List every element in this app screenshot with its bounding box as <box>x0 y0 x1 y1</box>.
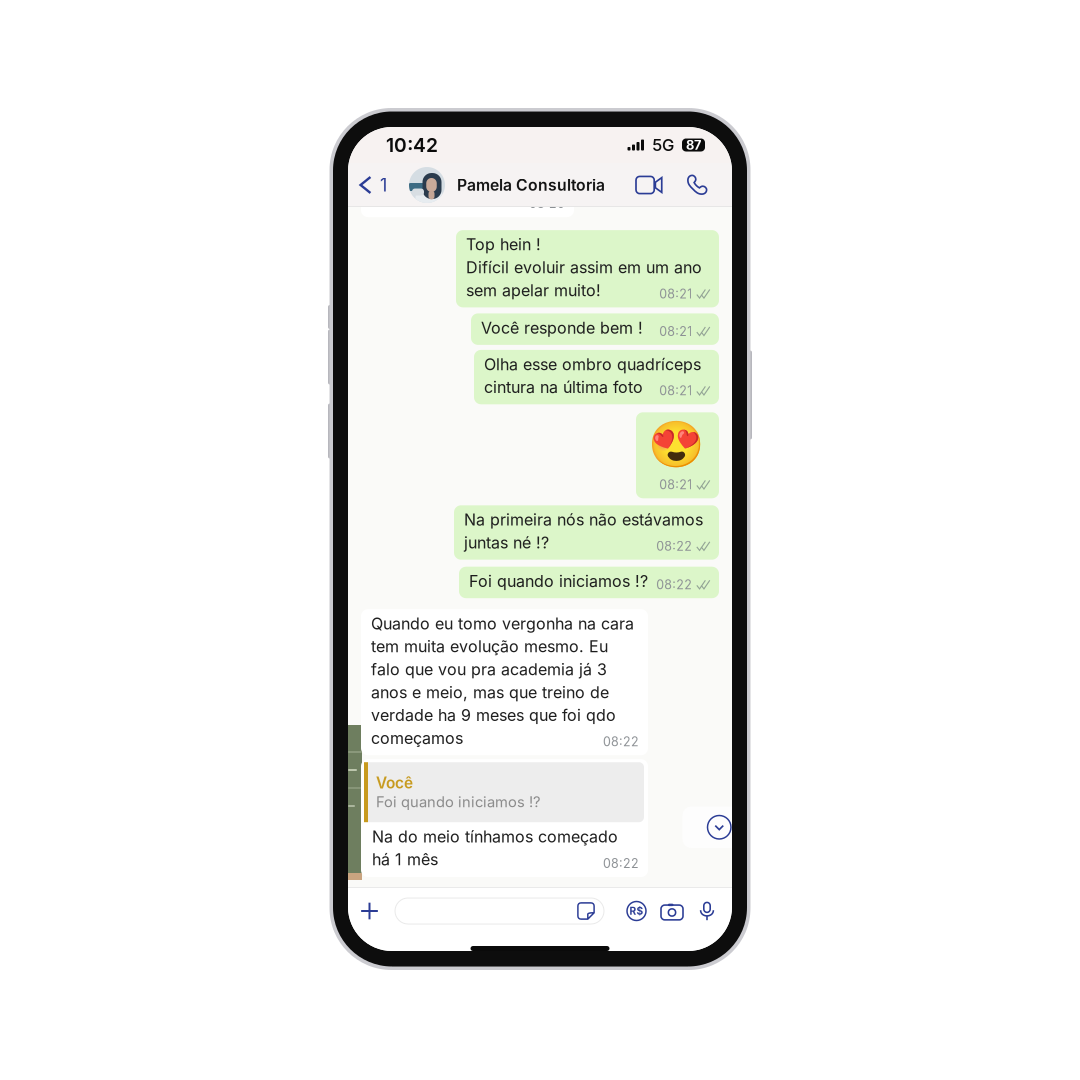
staticText: falo que vou pra academia já 3 <box>371 660 607 679</box>
staticText: 10:42 <box>386 133 438 157</box>
staticText: Foi quando iniciamos !? <box>376 793 540 811</box>
button[interactable] <box>395 898 604 924</box>
staticText: 08:21 <box>659 286 692 301</box>
staticText: há 1 mês <box>372 850 438 869</box>
staticText: verdade ha 9 meses que foi qdo <box>371 706 616 725</box>
staticText: 08:20 <box>529 196 565 211</box>
staticText: Você responde bem ! <box>481 318 643 338</box>
button[interactable]: Voice call <box>679 165 715 205</box>
staticText: R$ <box>629 905 643 917</box>
staticText: começamos <box>371 728 463 748</box>
staticText: cintura na última foto <box>484 378 643 397</box>
button[interactable]: Scroll to bottom <box>682 806 753 848</box>
staticText: juntas né !? <box>464 533 549 552</box>
staticText: 😍 <box>648 418 704 471</box>
staticText: anos e meio, mas que treino de <box>371 683 609 702</box>
staticText: 1 <box>380 174 387 196</box>
staticText: Pamela Consultoria <box>457 175 605 194</box>
staticText: Difícil evoluir assim em um ano <box>466 258 702 277</box>
staticText: 87 <box>686 137 701 153</box>
staticText: 08:22 <box>656 539 692 554</box>
staticText: Top hein ! <box>466 235 541 254</box>
button[interactable]: Attach <box>353 891 386 930</box>
staticText: 08:22 <box>603 856 639 871</box>
staticText: Na primeira nós não estávamos <box>464 510 703 529</box>
staticText: 08:21 <box>659 477 692 492</box>
staticText: tem muita evolução mesmo. Eu <box>371 637 608 656</box>
button[interactable]: Pamela Consultoria <box>387 167 605 203</box>
button[interactable]: Voice message <box>690 891 724 931</box>
staticText: 08:21 <box>659 383 692 398</box>
button[interactable]: Back <box>348 166 387 204</box>
staticText: 08:21 <box>659 324 692 339</box>
staticText: sem apelar muito! <box>466 281 601 300</box>
staticText: Foi quando iniciamos !? <box>469 571 648 591</box>
staticText: Olha esse ombro quadríceps <box>484 355 701 374</box>
staticText: 08:22 <box>603 734 639 749</box>
staticText: Você <box>376 774 413 792</box>
button[interactable]: Video call <box>629 168 669 202</box>
staticText: Quando eu tomo vergonha na cara <box>371 614 634 633</box>
staticText: 08:22 <box>656 577 692 592</box>
staticText: 5G <box>652 135 674 155</box>
button[interactable]: Camera <box>654 892 690 930</box>
button[interactable]: Payments <box>619 890 654 931</box>
staticText: Na do meio tínhamos começado <box>372 827 618 846</box>
